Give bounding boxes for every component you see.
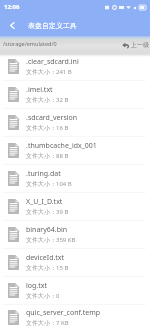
button[interactable]: binary64.bin bbox=[0, 221, 150, 249]
button[interactable]: deviceId.txt bbox=[0, 249, 150, 277]
button[interactable]: .clear_sdcard.ini bbox=[0, 53, 150, 81]
staticText: 文件大小：15 B bbox=[26, 264, 69, 272]
button[interactable]: .sdcard_version bbox=[0, 109, 150, 137]
button[interactable]: 返回 bbox=[0, 14, 24, 36]
staticText: .sdcard_version bbox=[26, 113, 78, 123]
button[interactable]: log.txt bbox=[0, 277, 150, 305]
staticText: .thumbcache_idx_001 bbox=[26, 141, 97, 151]
staticText: log.txt bbox=[26, 281, 47, 291]
staticText: 上一级 bbox=[131, 41, 149, 49]
staticText: binary64.bin bbox=[26, 225, 68, 235]
staticText: deviceId.txt bbox=[26, 253, 65, 263]
staticText: 文件大小：16 B bbox=[26, 124, 69, 132]
staticText: 文件大小：88 B bbox=[26, 152, 69, 160]
staticText: .clear_sdcard.ini bbox=[26, 57, 79, 67]
staticText: 文件大小：32 B bbox=[26, 96, 69, 104]
staticText: .turing.dat bbox=[26, 169, 61, 179]
staticText: 表盘自定义工具 bbox=[28, 21, 77, 30]
button[interactable]: .thumbcache_idx_001 bbox=[0, 137, 150, 165]
staticText: 文件大小：39 B bbox=[26, 208, 69, 216]
button[interactable]: .imei.txt bbox=[0, 81, 150, 109]
staticText: 文件大小：241 B bbox=[26, 68, 72, 76]
staticText: 12:06 bbox=[4, 3, 20, 11]
button[interactable]: .turing.dat bbox=[0, 165, 150, 193]
button[interactable]: quic_server_conf.temp bbox=[0, 305, 150, 330]
staticText: X_U_I_D.txt bbox=[26, 197, 63, 207]
button[interactable]: 上一级 bbox=[122, 41, 149, 49]
staticText: .imei.txt bbox=[26, 85, 53, 95]
staticText: /storage/emulated/0 bbox=[3, 40, 57, 47]
staticText: 文件大小：0 bbox=[26, 292, 60, 300]
staticText: quic_server_conf.temp bbox=[26, 308, 100, 318]
staticText: 文件大小：7 KB bbox=[26, 319, 69, 327]
staticText: 文件大小：359 KB bbox=[26, 236, 76, 244]
staticText: 文件大小：104 B bbox=[26, 180, 72, 188]
button[interactable]: X_U_I_D.txt bbox=[0, 193, 150, 221]
